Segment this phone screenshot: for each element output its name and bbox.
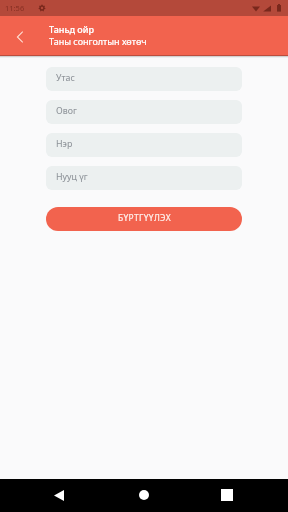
button[interactable]: Recent apps bbox=[214, 482, 240, 508]
staticText: Таньд ойр bbox=[49, 23, 95, 35]
staticText: Таны сонголтын хөтөч bbox=[49, 35, 147, 47]
button[interactable]: Нэр bbox=[46, 133, 242, 157]
button[interactable]: Нууц үг bbox=[46, 166, 242, 190]
button[interactable]: Овог bbox=[46, 100, 242, 124]
staticText: БҮРТГҮҮЛЭХ bbox=[118, 212, 171, 223]
button[interactable]: БҮРТГҮҮЛЭХ bbox=[46, 207, 242, 231]
staticText: Нууц үг bbox=[56, 171, 88, 183]
button[interactable]: Утас bbox=[46, 67, 242, 91]
button[interactable]: Home bbox=[131, 482, 157, 508]
staticText: Утас bbox=[56, 72, 75, 84]
button[interactable]: Back bbox=[46, 482, 72, 508]
staticText: 11:56 bbox=[5, 3, 25, 13]
staticText: Овог bbox=[56, 105, 77, 117]
button[interactable]: Back bbox=[6, 23, 34, 51]
staticText: Нэр bbox=[56, 138, 73, 150]
